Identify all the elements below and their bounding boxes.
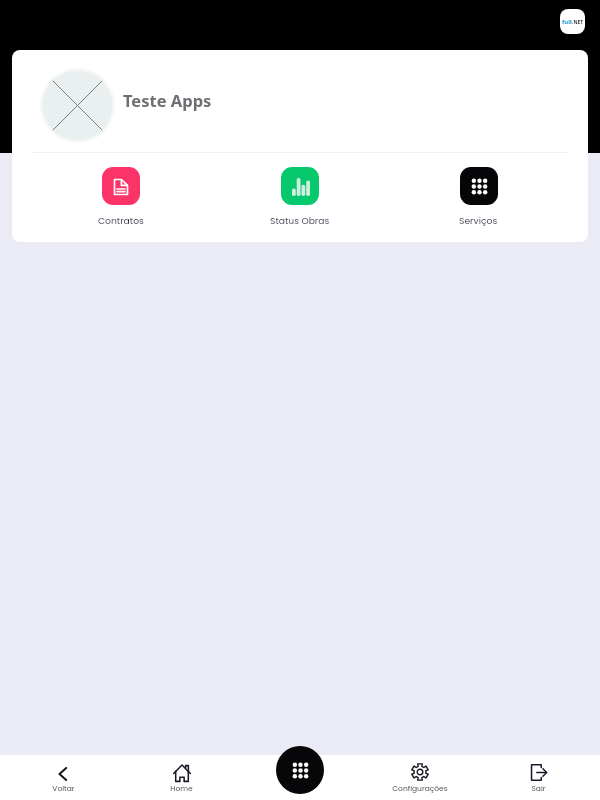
button[interactable]: Configurações: [360, 755, 480, 800]
staticText: full: [562, 18, 572, 26]
button[interactable]: Status Obras: [210, 167, 389, 227]
button[interactable]: Home: [120, 755, 240, 800]
staticText: Sair: [531, 783, 546, 793]
staticText: Home: [170, 783, 193, 793]
staticText: Voltar: [52, 783, 75, 793]
button[interactable]: full.NET logo: [560, 9, 585, 34]
button[interactable]: Sair: [480, 755, 600, 800]
staticText: Status Obras: [270, 214, 330, 227]
button[interactable]: Serviços: [389, 167, 568, 227]
staticText: Teste Apps: [123, 89, 212, 111]
staticText: Serviços: [459, 214, 498, 227]
button[interactable]: Contratos: [32, 167, 210, 227]
button[interactable]: Apps: [276, 746, 324, 794]
staticText: Configurações: [392, 783, 448, 793]
button[interactable]: Voltar: [0, 755, 120, 800]
staticText: .NET: [572, 19, 584, 26]
staticText: Contratos: [98, 214, 144, 227]
